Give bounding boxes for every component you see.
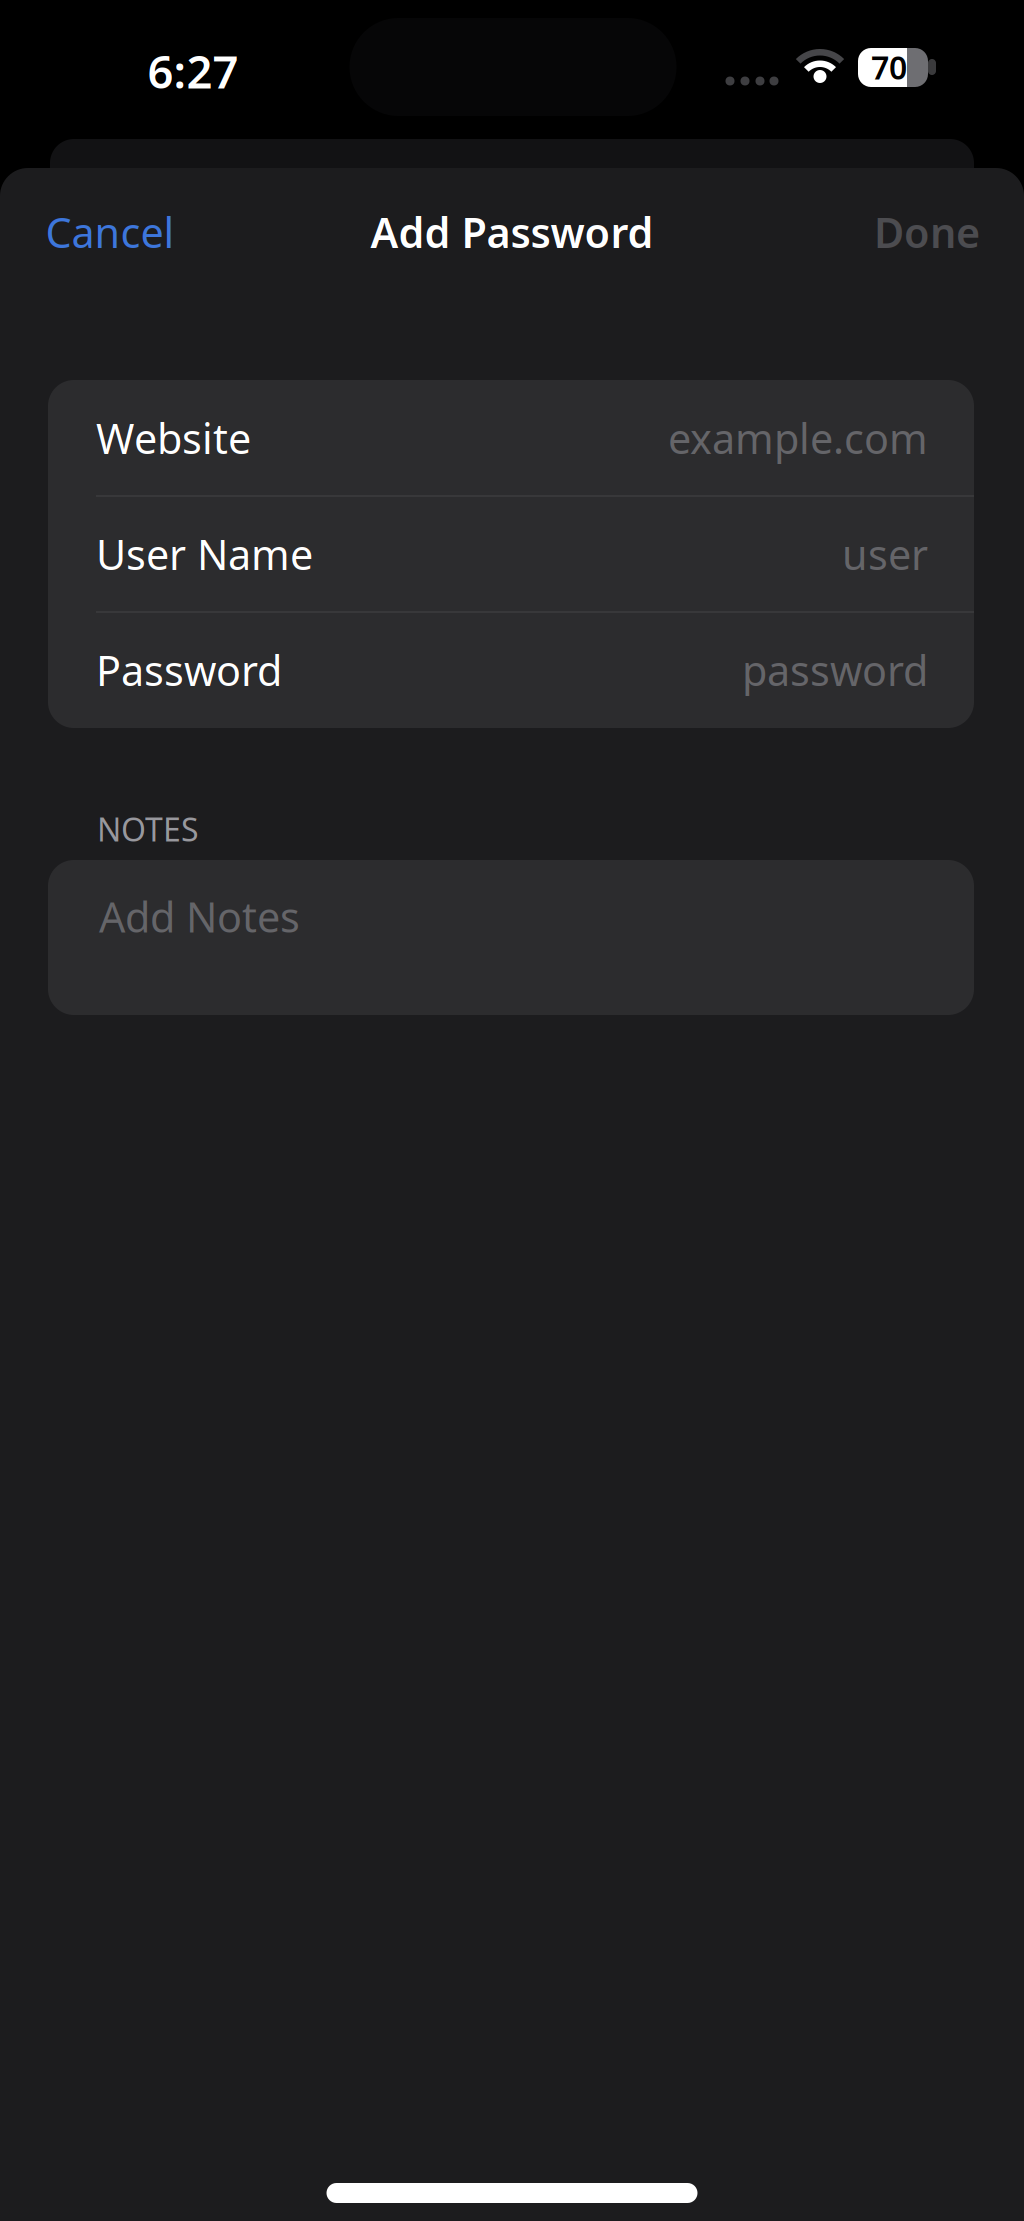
staticText: Add Password bbox=[370, 205, 653, 259]
button[interactable]: Done bbox=[874, 205, 980, 259]
button[interactable]: User Name bbox=[48, 496, 974, 612]
staticText: Password bbox=[96, 643, 282, 697]
staticText: User Name bbox=[96, 527, 313, 581]
staticText: example.com bbox=[668, 411, 928, 465]
button[interactable]: Website bbox=[48, 380, 974, 496]
staticText: 6:27 bbox=[147, 41, 238, 101]
staticText: Website bbox=[96, 411, 251, 465]
staticText: 70 bbox=[871, 46, 907, 88]
button[interactable]: Password bbox=[48, 612, 974, 728]
staticText: password bbox=[742, 643, 928, 697]
button[interactable]: Add Notes bbox=[48, 860, 974, 1015]
button[interactable]: Cancel bbox=[45, 205, 174, 259]
staticText: user bbox=[842, 527, 928, 581]
staticText: Add Notes bbox=[99, 889, 300, 944]
staticText: Cancel bbox=[45, 205, 174, 259]
staticText: Done bbox=[874, 205, 980, 259]
staticText: NOTES bbox=[97, 808, 199, 850]
